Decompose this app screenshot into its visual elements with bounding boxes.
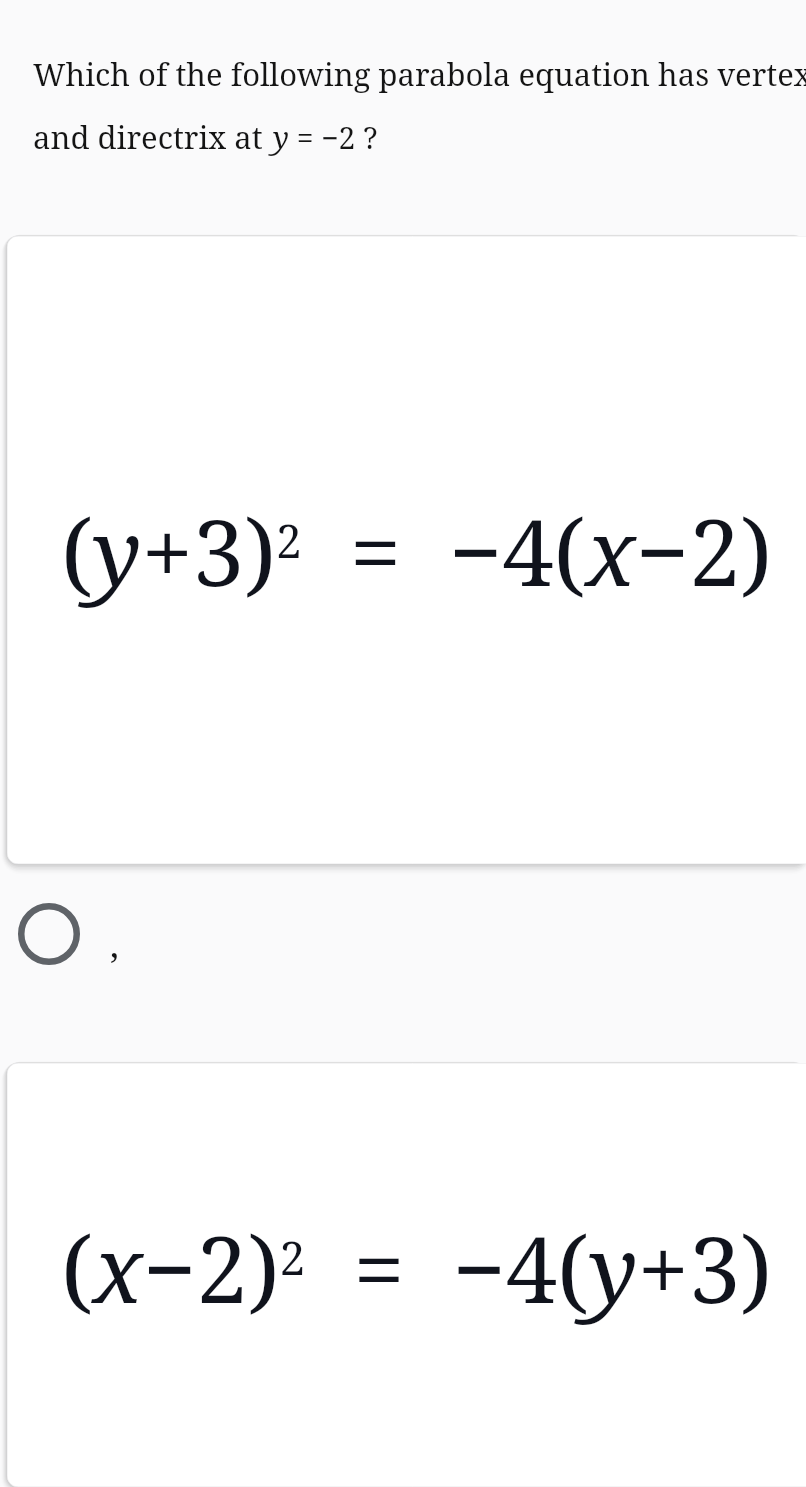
staticText: y = −2 ? <box>273 117 378 158</box>
button[interactable]: (x−2)2 = −4(y+3) <box>7 1063 806 1487</box>
staticText: (y+3)2 = −4(x−2) <box>61 488 773 613</box>
staticText: , <box>110 922 119 968</box>
staticText: (x−2)2 = −4(y+3) <box>61 1205 773 1330</box>
button[interactable]: Select first answer option <box>0 875 806 993</box>
staticText: Which of the following parabola equation… <box>33 46 806 96</box>
staticText: and directrix at <box>33 116 263 158</box>
button[interactable]: (y+3)2 = −4(x−2) <box>7 236 806 864</box>
